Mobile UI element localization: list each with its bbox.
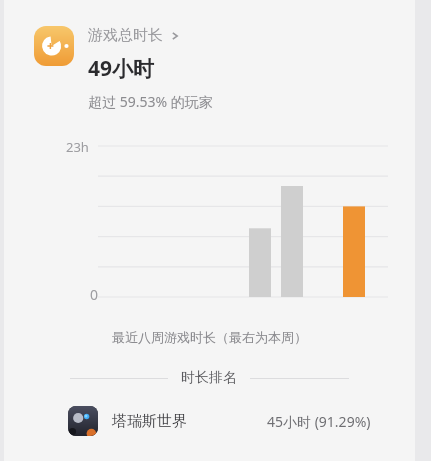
staticText: 45小时 (91.29%) xyxy=(267,412,371,431)
staticText: 0 xyxy=(90,285,99,304)
staticText: 最近八周游戏时长（最右为本周） xyxy=(4,329,415,345)
button[interactable]: 游戏总时长 xyxy=(34,26,213,111)
staticText: 塔瑞斯世界 xyxy=(112,412,187,431)
button[interactable]: 塔瑞斯世界 xyxy=(4,403,415,439)
other: 游戏总时长 xyxy=(34,26,74,66)
staticText: 23h xyxy=(66,138,89,156)
staticText: 时长排名 xyxy=(181,369,237,387)
staticText: 游戏总时长 xyxy=(88,26,163,45)
staticText: 超过 59.53% 的玩家 xyxy=(88,92,213,111)
staticText: 49小时 xyxy=(88,54,155,83)
